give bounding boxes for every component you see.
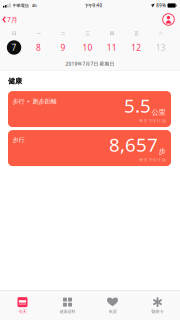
staticText: 8 [36,42,41,53]
button[interactable]: 步行 [8,130,171,166]
button[interactable]: 7月 [0,11,18,28]
staticText: 四 [110,31,114,36]
staticText: 健康資料 [59,309,75,314]
staticText: 7 [11,42,16,53]
button[interactable]: 日 [2,30,26,55]
button[interactable]: 五 [124,30,149,55]
staticText: 89% [156,2,166,8]
staticText: 一 [36,31,40,36]
staticText: 10 [82,42,92,53]
staticText: 13 [156,42,166,53]
staticText: 昨天 下午11:34 [139,118,165,124]
button[interactable]: Profile [162,11,180,28]
button[interactable]: 健康資料 [45,291,90,320]
staticText: 下午9:40 [84,2,102,8]
staticText: 步行 [12,136,24,144]
button[interactable]: 六 [148,30,173,55]
button[interactable]: 醫療卡 [135,291,180,320]
staticText: 步 [158,147,165,156]
staticText: 12 [131,42,141,53]
staticText: 三 [85,31,89,36]
staticText: 步行 + 跑步距離 [12,97,56,105]
staticText: 昨天 下午11:34 [139,157,165,163]
staticText: 來源 [108,309,116,314]
staticText: 日 [12,31,16,36]
button[interactable]: 步行 + 跑步距離 [8,91,171,127]
staticText: 六 [159,31,163,36]
staticText: 健康 [8,76,22,86]
button[interactable]: 三 [75,30,100,55]
staticText: 醫療卡 [151,309,163,314]
staticText: 9 [60,42,65,53]
staticText: 五 [134,31,138,36]
staticText: 7月 [7,15,18,24]
button[interactable]: 一 [26,30,51,55]
button[interactable]: 今天 [0,291,45,320]
staticText: 8,657 [109,132,158,157]
button[interactable]: 二 [51,30,75,55]
button[interactable]: 四 [100,30,124,55]
staticText: 2019年7月7日 星期日 [65,60,114,67]
button[interactable]: 來源 [90,291,135,320]
staticText: 11 [107,42,117,53]
staticText: 公里 [151,108,165,117]
staticText: 二 [61,31,65,36]
staticText: 4G [32,3,37,8]
staticText: 今天 [18,309,26,314]
staticText: 中華電信 [13,3,29,8]
staticText: 5.5 [124,93,151,118]
